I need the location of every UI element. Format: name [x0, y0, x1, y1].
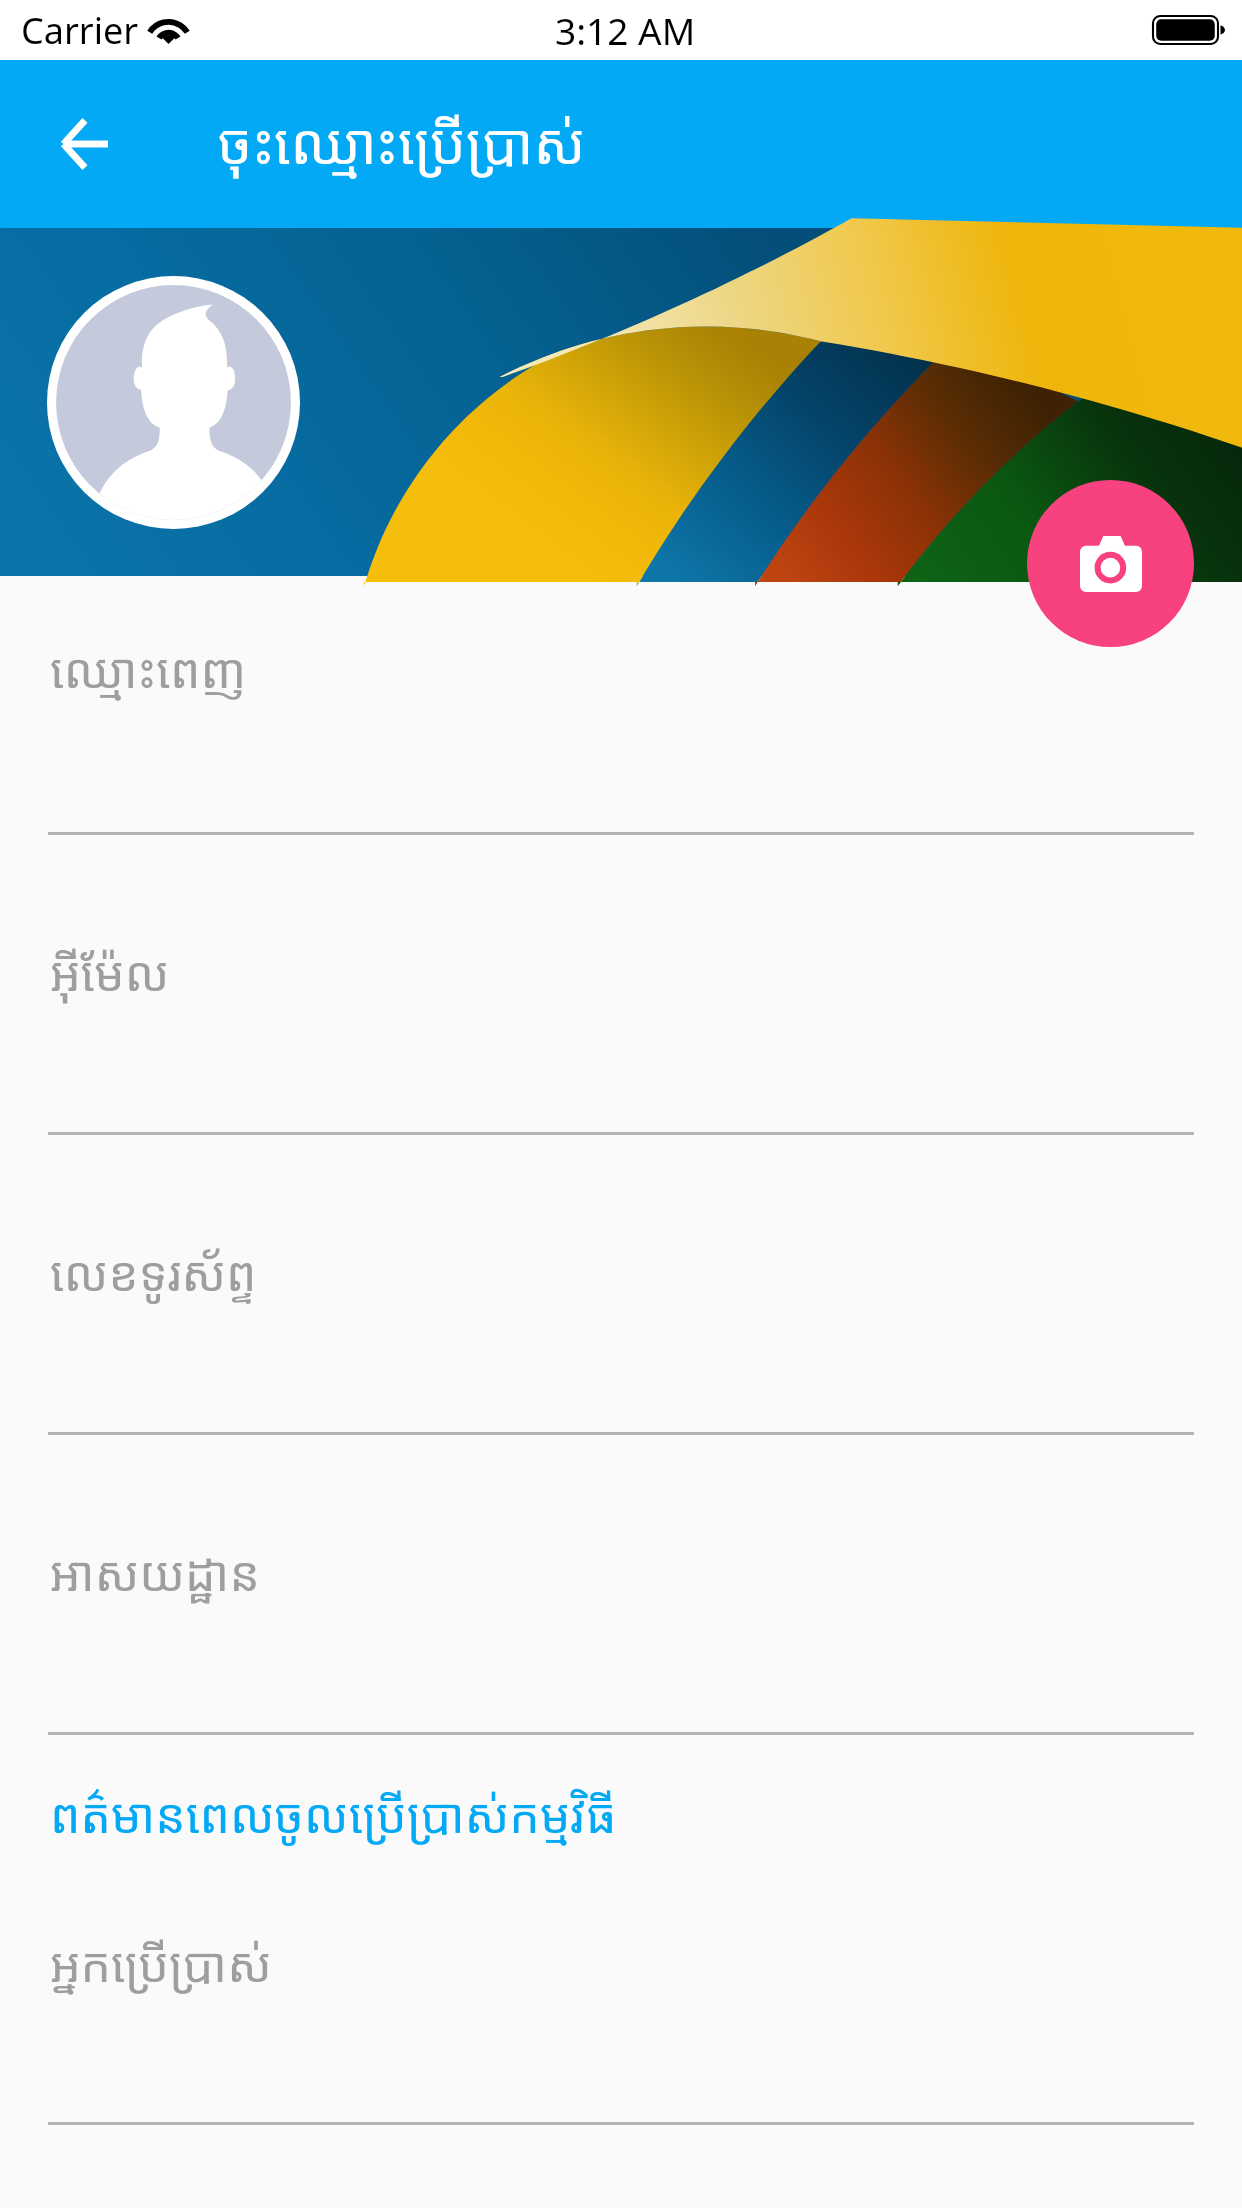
button[interactable]: ពត៌មានពេលចូលប្រើប្រាស់កម្មវិធី	[50, 1782, 617, 1847]
button[interactable]: លេខទូរស័ព្ទ	[0, 1135, 1242, 1435]
staticText: អ៊ីម៉ែល	[50, 940, 170, 1005]
button[interactable]: អាសយដ្ឋាន	[0, 1435, 1242, 1735]
button[interactable]: អ្នកប្រើប្រាស់	[50, 1931, 272, 1996]
button[interactable]: Back	[20, 80, 148, 208]
staticText: លេខទូរស័ព្ទ	[50, 1240, 257, 1305]
button[interactable]: អ៊ីម៉ែល	[0, 835, 1242, 1135]
staticText: 3:12 AM	[555, 5, 696, 55]
staticText: ចុះឈ្មោះប្រើប្រាស់	[218, 104, 586, 180]
button[interactable]: Change photo	[1027, 480, 1194, 647]
staticText: អាសយដ្ឋាន	[50, 1540, 260, 1605]
staticText: ឈ្មោះពេញ	[50, 637, 247, 702]
button[interactable]: ឈ្មោះពេញ	[0, 576, 1242, 835]
staticText: Carrier	[21, 6, 139, 55]
